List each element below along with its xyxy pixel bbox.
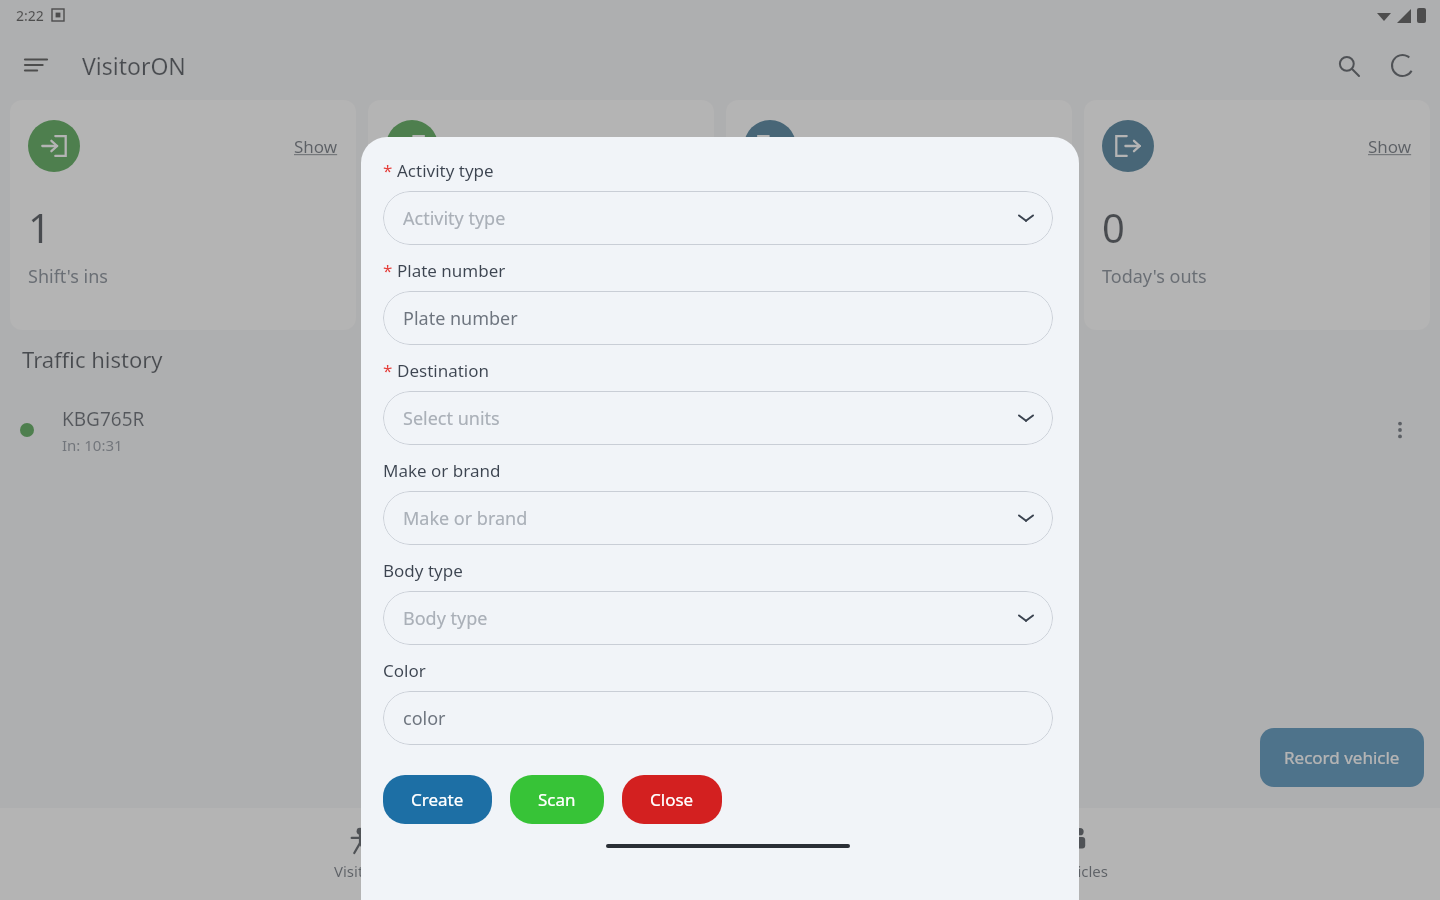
- button[interactable]: Menu: [14, 43, 58, 87]
- staticText: VisitorON: [82, 50, 186, 81]
- staticText: Body type: [403, 606, 488, 631]
- button[interactable]: Show: [10, 100, 356, 330]
- staticText: Show: [294, 135, 338, 158]
- button[interactable]: Show: [1010, 135, 1054, 158]
- staticText: Shift's ins: [28, 264, 108, 289]
- button[interactable]: Show: [368, 100, 714, 330]
- staticText: In: 10:31: [62, 435, 123, 455]
- staticText: Scan: [538, 788, 576, 811]
- staticText: Destination: [397, 359, 490, 382]
- staticText: Close: [650, 788, 694, 811]
- staticText: Make or brand: [403, 506, 528, 531]
- staticText: Plate number: [403, 306, 518, 331]
- button[interactable]: Show: [726, 100, 1072, 330]
- button[interactable]: Plate number: [383, 291, 1053, 345]
- button[interactable]: Visitors: [0, 808, 720, 900]
- staticText: Record vehicle: [1284, 746, 1400, 769]
- staticText: Today's outs: [1102, 264, 1207, 289]
- button[interactable]: Activity type: [383, 191, 1053, 245]
- button[interactable]: Record vehicle: [1260, 728, 1424, 787]
- button[interactable]: Show: [1084, 100, 1430, 330]
- staticText: Color: [383, 659, 426, 682]
- staticText: Create: [411, 788, 464, 811]
- staticText: 0: [1102, 200, 1125, 254]
- staticText: *: [383, 259, 397, 282]
- button[interactable]: Search: [1328, 45, 1368, 85]
- staticText: Body type: [383, 559, 463, 582]
- staticText: Plate number: [397, 259, 506, 282]
- button[interactable]: Show: [1368, 135, 1412, 158]
- staticText: color: [403, 706, 446, 731]
- staticText: Show: [652, 135, 696, 158]
- button[interactable]: Select units: [383, 391, 1053, 445]
- button[interactable]: Create: [383, 775, 492, 824]
- staticText: 2: [744, 200, 767, 254]
- staticText: Activity type: [403, 206, 506, 231]
- button[interactable]: color: [383, 691, 1053, 745]
- staticText: Visitors: [334, 861, 386, 881]
- staticText: Select units: [403, 406, 500, 431]
- button[interactable]: Close: [622, 775, 722, 824]
- staticText: Vehicles: [1051, 861, 1109, 881]
- button[interactable]: More options: [1380, 410, 1420, 450]
- staticText: Show: [1010, 135, 1054, 158]
- staticText: *: [383, 359, 397, 382]
- button[interactable]: KBG765R: [0, 400, 1440, 460]
- staticText: Show: [1368, 135, 1412, 158]
- button[interactable]: Make or brand: [383, 491, 1053, 545]
- staticText: 3: [386, 200, 409, 254]
- staticText: *: [383, 159, 397, 182]
- button[interactable]: Scan: [510, 775, 604, 824]
- button[interactable]: Body type: [383, 591, 1053, 645]
- staticText: Activity type: [397, 159, 494, 182]
- staticText: KBG765R: [62, 406, 145, 432]
- staticText: 1: [28, 200, 51, 254]
- staticText: 2:22: [16, 6, 44, 25]
- staticText: Traffic history: [22, 344, 163, 374]
- button[interactable]: Vehicles: [720, 808, 1440, 900]
- button[interactable]: Show: [652, 135, 696, 158]
- button[interactable]: Refresh: [1382, 45, 1422, 85]
- staticText: Today's ins: [386, 264, 478, 289]
- button[interactable]: Show: [294, 135, 338, 158]
- staticText: Make or brand: [383, 459, 501, 482]
